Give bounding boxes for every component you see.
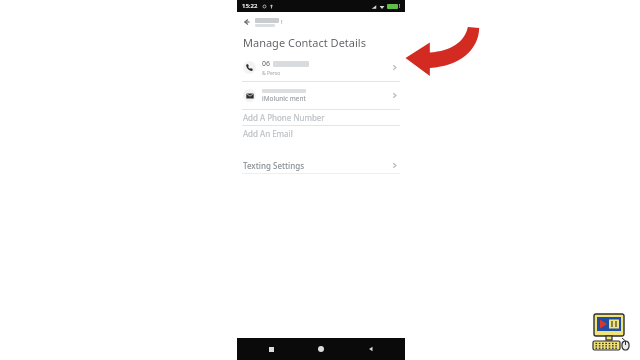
button[interactable]: Back to Settings (243, 12, 405, 32)
staticText: Texting Settings (243, 160, 390, 171)
button[interactable]: Back (358, 338, 384, 360)
staticText: ! (281, 18, 283, 26)
staticText: ! (399, 3, 401, 10)
button[interactable]: Texting Settings (237, 157, 405, 174)
staticText: 06 (262, 59, 271, 69)
button[interactable]: Home (308, 338, 334, 360)
staticText: Manage Contact Details (243, 35, 366, 50)
staticText: Add An Email (243, 128, 293, 139)
button[interactable]: Recent apps (258, 338, 284, 360)
staticText: Add A Phone Number (243, 112, 325, 123)
staticText: iMolunic ment (262, 94, 306, 103)
staticText: & Perso (262, 70, 281, 77)
button[interactable]: Add An Email (237, 126, 405, 141)
button[interactable]: Add A Phone Number (237, 110, 405, 126)
button[interactable]: iMolunic ment (237, 82, 405, 110)
button[interactable]: 06 (237, 54, 405, 82)
staticText: 15:22 (242, 2, 258, 10)
